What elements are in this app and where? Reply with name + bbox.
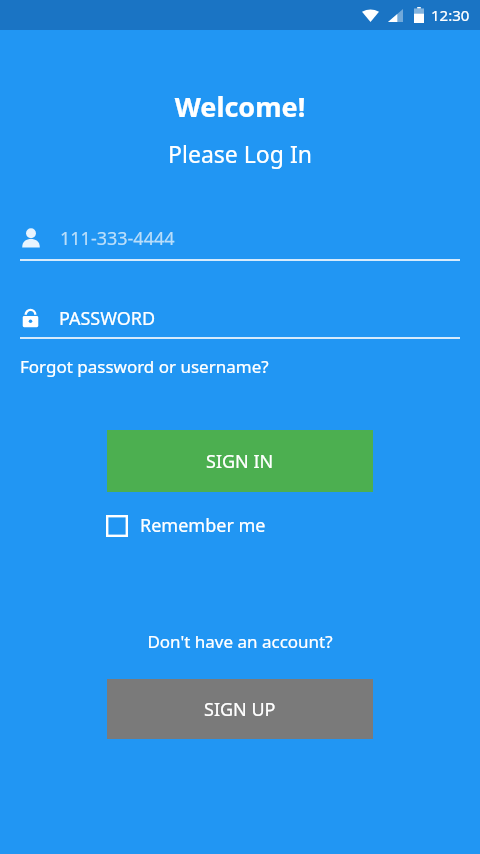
button[interactable]: Password	[20, 303, 460, 339]
button[interactable]: Forgot password or username?	[20, 355, 269, 378]
other: Username	[20, 227, 42, 249]
staticText: 12:30	[431, 5, 470, 25]
staticText: Don't have an account?	[0, 630, 480, 653]
other: Password	[20, 308, 41, 329]
staticText: Please Log In	[0, 138, 480, 169]
other: Battery	[414, 7, 424, 23]
staticText: 111-333-4444	[60, 226, 175, 251]
other: Wi-Fi	[362, 9, 379, 22]
staticText: PASSWORD	[59, 306, 156, 331]
button[interactable]: SIGN IN	[107, 430, 373, 492]
button[interactable]: Remember me	[106, 513, 266, 538]
staticText: SIGN UP	[204, 697, 276, 722]
staticText: Welcome!	[0, 88, 480, 125]
staticText: SIGN IN	[206, 449, 274, 474]
staticText: Remember me	[140, 513, 266, 538]
other: Cellular signal	[388, 9, 403, 22]
button[interactable]: SIGN UP	[107, 679, 373, 739]
button[interactable]: Username	[20, 221, 460, 261]
